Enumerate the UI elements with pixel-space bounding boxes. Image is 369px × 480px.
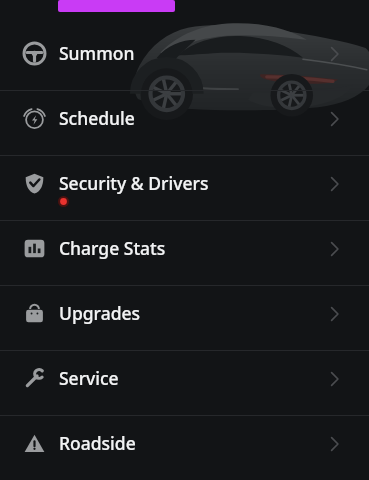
other: Open Summon bbox=[330, 46, 339, 62]
other: Open Upgrades bbox=[330, 306, 339, 322]
button[interactable]: Schedule bbox=[0, 91, 369, 156]
staticText: Service bbox=[59, 366, 119, 390]
other: Open Schedule bbox=[330, 111, 339, 127]
staticText: Upgrades bbox=[59, 301, 141, 325]
other: Open Service bbox=[330, 371, 339, 387]
staticText: Schedule bbox=[59, 106, 135, 130]
staticText: Roadside bbox=[59, 431, 136, 455]
other: Open Charge Stats bbox=[330, 241, 339, 257]
button[interactable]: Security & Drivers bbox=[0, 156, 369, 221]
other: Open Security & Drivers bbox=[330, 176, 339, 192]
button[interactable]: Summon bbox=[0, 26, 369, 91]
staticText: Charge Stats bbox=[59, 236, 166, 260]
staticText: Summon bbox=[59, 41, 135, 65]
button[interactable]: Service bbox=[0, 351, 369, 416]
button[interactable]: Roadside bbox=[0, 416, 369, 480]
button[interactable]: Upgrades bbox=[0, 286, 369, 351]
button[interactable]: Charge Stats bbox=[0, 221, 369, 286]
other: Open Roadside bbox=[330, 436, 339, 452]
staticText: Security & Drivers bbox=[59, 171, 209, 195]
